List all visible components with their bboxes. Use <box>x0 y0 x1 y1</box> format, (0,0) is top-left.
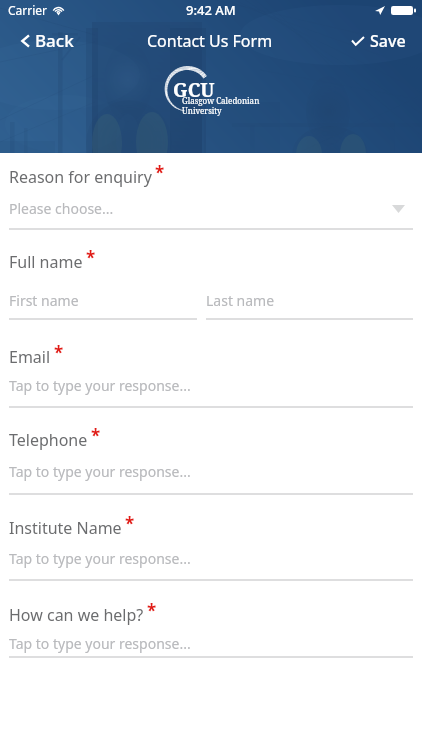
staticText: Please choose... <box>9 199 114 218</box>
staticText: Institute Name <box>9 517 122 539</box>
button[interactable]: Back <box>14 28 80 54</box>
staticText: * <box>91 424 101 447</box>
staticText: Telephone <box>9 429 88 451</box>
staticText: University <box>182 105 222 116</box>
staticText: Tap to type your response... <box>9 376 191 395</box>
staticText: * <box>54 341 64 364</box>
button[interactable]: Save <box>345 28 411 54</box>
staticText: First name <box>9 291 79 310</box>
button[interactable]: Tap to type your response... <box>0 634 422 654</box>
staticText: 9:42 AM <box>186 1 236 19</box>
staticText: Tap to type your response... <box>9 634 191 653</box>
staticText: * <box>147 599 157 622</box>
staticText: Tap to type your response... <box>9 549 191 568</box>
staticText: Contact Us Form <box>147 30 273 52</box>
staticText: * <box>125 512 135 535</box>
staticText: Last name <box>206 291 275 310</box>
other: Open choices <box>392 205 405 213</box>
staticText: Tap to type your response... <box>9 462 191 481</box>
staticText: Full name <box>9 251 83 273</box>
staticText: Email <box>9 346 51 368</box>
button[interactable]: Tap to type your response... <box>0 376 422 396</box>
staticText: How can we help? <box>9 604 144 626</box>
staticText: * <box>86 246 96 269</box>
button[interactable]: Please choose... <box>0 199 422 221</box>
staticText: Back <box>35 29 74 52</box>
staticText: GCU <box>173 77 215 103</box>
staticText: Carrier <box>8 2 48 18</box>
button[interactable]: Tap to type your response... <box>0 462 422 482</box>
staticText: Reason for enquiry <box>9 166 152 188</box>
button[interactable]: Tap to type your response... <box>0 549 422 569</box>
staticText: * <box>155 161 165 184</box>
staticText: Save <box>370 30 406 52</box>
staticText: Glasgow Caledonian <box>182 95 260 106</box>
